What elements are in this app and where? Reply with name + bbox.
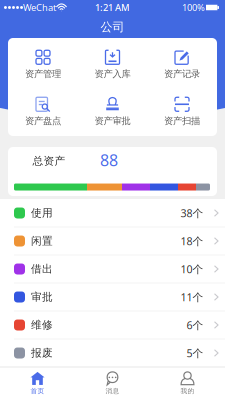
staticText: 资产记录 — [164, 68, 200, 80]
button[interactable]: 维修 — [0, 311, 225, 339]
button[interactable]: 使用 — [0, 199, 225, 227]
button[interactable]: 资产盘点 — [10, 92, 76, 132]
staticText: 1:21 AM — [95, 1, 130, 14]
staticText: 11个 — [180, 290, 203, 304]
staticText: 18个 — [180, 234, 203, 248]
button[interactable]: 资产扫描 — [149, 92, 215, 132]
button[interactable]: 闲置 — [0, 227, 225, 255]
staticText: 报废 — [31, 346, 53, 359]
button[interactable]: 资产管理 — [10, 45, 76, 85]
button[interactable]: 消息 — [75, 367, 150, 399]
button[interactable]: 借出 — [0, 255, 225, 283]
staticText: 资产审批 — [94, 115, 130, 127]
staticText: 38个 — [180, 206, 203, 220]
staticText: 审批 — [31, 290, 53, 303]
staticText: 88 — [100, 149, 118, 171]
button[interactable]: 审批 — [0, 283, 225, 311]
button[interactable]: 我的 — [150, 367, 225, 399]
staticText: 100% — [182, 1, 205, 14]
staticText: 首页 — [30, 387, 44, 395]
button[interactable]: 报废 — [0, 339, 225, 367]
staticText: 资产扫描 — [164, 115, 200, 127]
staticText: 总资产 — [32, 154, 65, 167]
button[interactable]: 资产入库 — [79, 45, 145, 85]
staticText: 借出 — [31, 262, 53, 275]
staticText: 我的 — [180, 387, 194, 395]
staticText: 5个 — [186, 346, 203, 360]
button[interactable]: 资产审批 — [79, 92, 145, 132]
staticText: 消息 — [105, 387, 119, 395]
staticText: 公司 — [100, 20, 124, 34]
staticText: 10个 — [180, 262, 203, 276]
staticText: 闲置 — [31, 234, 53, 247]
staticText: 使用 — [31, 206, 53, 219]
staticText: 资产盘点 — [25, 115, 61, 127]
staticText: 资产管理 — [25, 68, 61, 80]
staticText: 6个 — [186, 318, 203, 332]
button[interactable]: 资产记录 — [149, 45, 215, 85]
staticText: WeChat — [23, 1, 56, 14]
button[interactable]: 首页 — [0, 367, 75, 399]
staticText: 维修 — [31, 318, 53, 331]
staticText: 资产入库 — [94, 68, 130, 80]
